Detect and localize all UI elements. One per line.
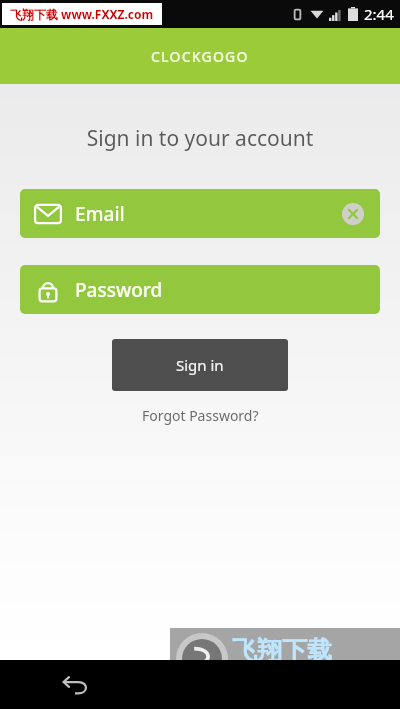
staticText: Password <box>75 277 163 303</box>
staticText: Sign in <box>176 355 224 375</box>
button[interactable]: Password <box>20 265 380 314</box>
staticText: Sign in to your account <box>0 124 400 153</box>
button[interactable]: Forgot Password? <box>132 402 269 429</box>
button[interactable]: Sign in <box>112 339 288 391</box>
staticText: 飞翔下载 www.FXXZ.com <box>10 6 154 22</box>
staticText: 飞翔下载 <box>232 635 332 666</box>
staticText: Email <box>75 201 125 227</box>
button[interactable]: Email <box>20 189 380 238</box>
staticText: Forgot Password? <box>142 406 259 425</box>
button[interactable]: Clear email <box>338 199 368 229</box>
button[interactable]: Back <box>56 666 94 704</box>
staticText: CLOCKGOGO <box>151 47 249 66</box>
staticText: 2:44 <box>364 4 394 24</box>
